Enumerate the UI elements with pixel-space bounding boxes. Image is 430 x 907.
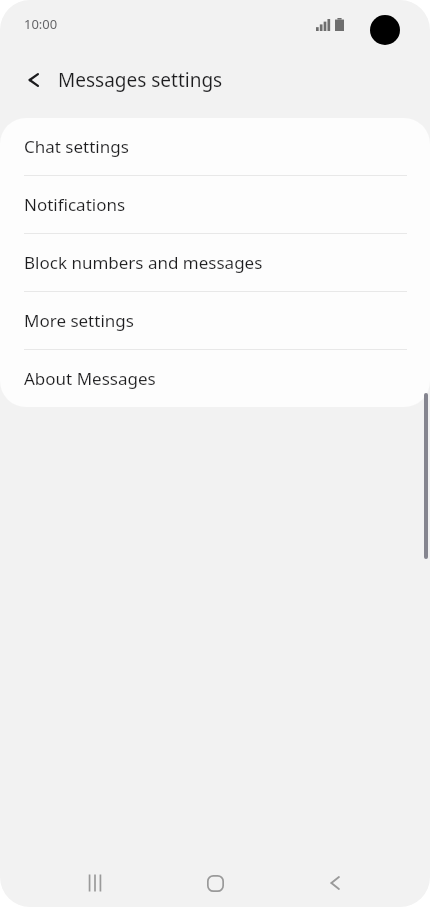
staticText: 10:00 [24, 15, 58, 33]
staticText: Messages settings [58, 67, 223, 93]
staticText: More settings [24, 309, 134, 332]
staticText: About Messages [24, 367, 156, 390]
button[interactable]: Notifications [0, 176, 430, 233]
button[interactable]: Back [311, 859, 359, 907]
button[interactable]: About Messages [0, 350, 430, 407]
button[interactable]: Recent apps [71, 859, 119, 907]
staticText: Notifications [24, 193, 126, 216]
staticText: Block numbers and messages [24, 251, 263, 274]
button[interactable]: More settings [0, 292, 430, 349]
button[interactable]: Chat settings [0, 118, 430, 175]
button[interactable]: Block numbers and messages [0, 234, 430, 291]
button[interactable]: Back [12, 58, 56, 102]
staticText: Chat settings [24, 135, 129, 158]
button[interactable]: Home [191, 859, 239, 907]
